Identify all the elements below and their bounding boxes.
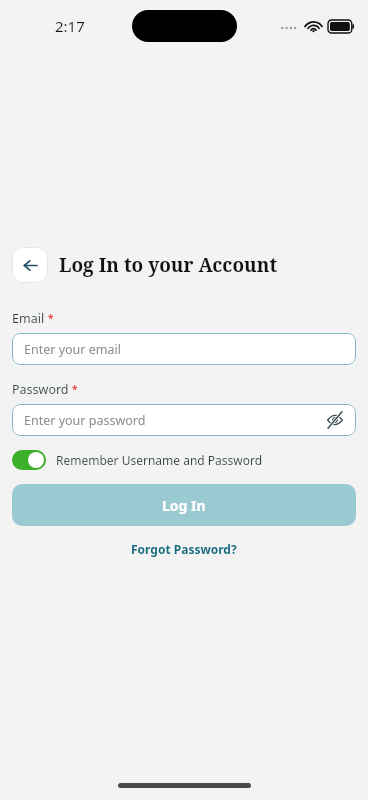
staticText: 2:17 [55,16,85,36]
staticText: Remember Username and Password [56,452,263,468]
button[interactable]: Enter your email [12,333,356,365]
button[interactable]: Back [12,247,48,283]
button[interactable]: Forgot Password? [125,539,243,559]
staticText: Email [12,310,45,327]
staticText: Password [12,381,69,398]
staticText: * [72,382,78,396]
button[interactable]: Remember Username and Password [12,450,263,470]
button[interactable]: Enter your password [12,404,356,436]
staticText: Enter your password [24,412,146,429]
staticText: Log In to your Account [59,252,278,278]
staticText: Log In [162,496,206,515]
staticText: Forgot Password? [131,541,237,557]
staticText: Enter your email [24,341,121,358]
button[interactable]: Show password [325,410,345,430]
staticText: * [48,311,54,325]
button[interactable]: Log In [12,484,356,526]
